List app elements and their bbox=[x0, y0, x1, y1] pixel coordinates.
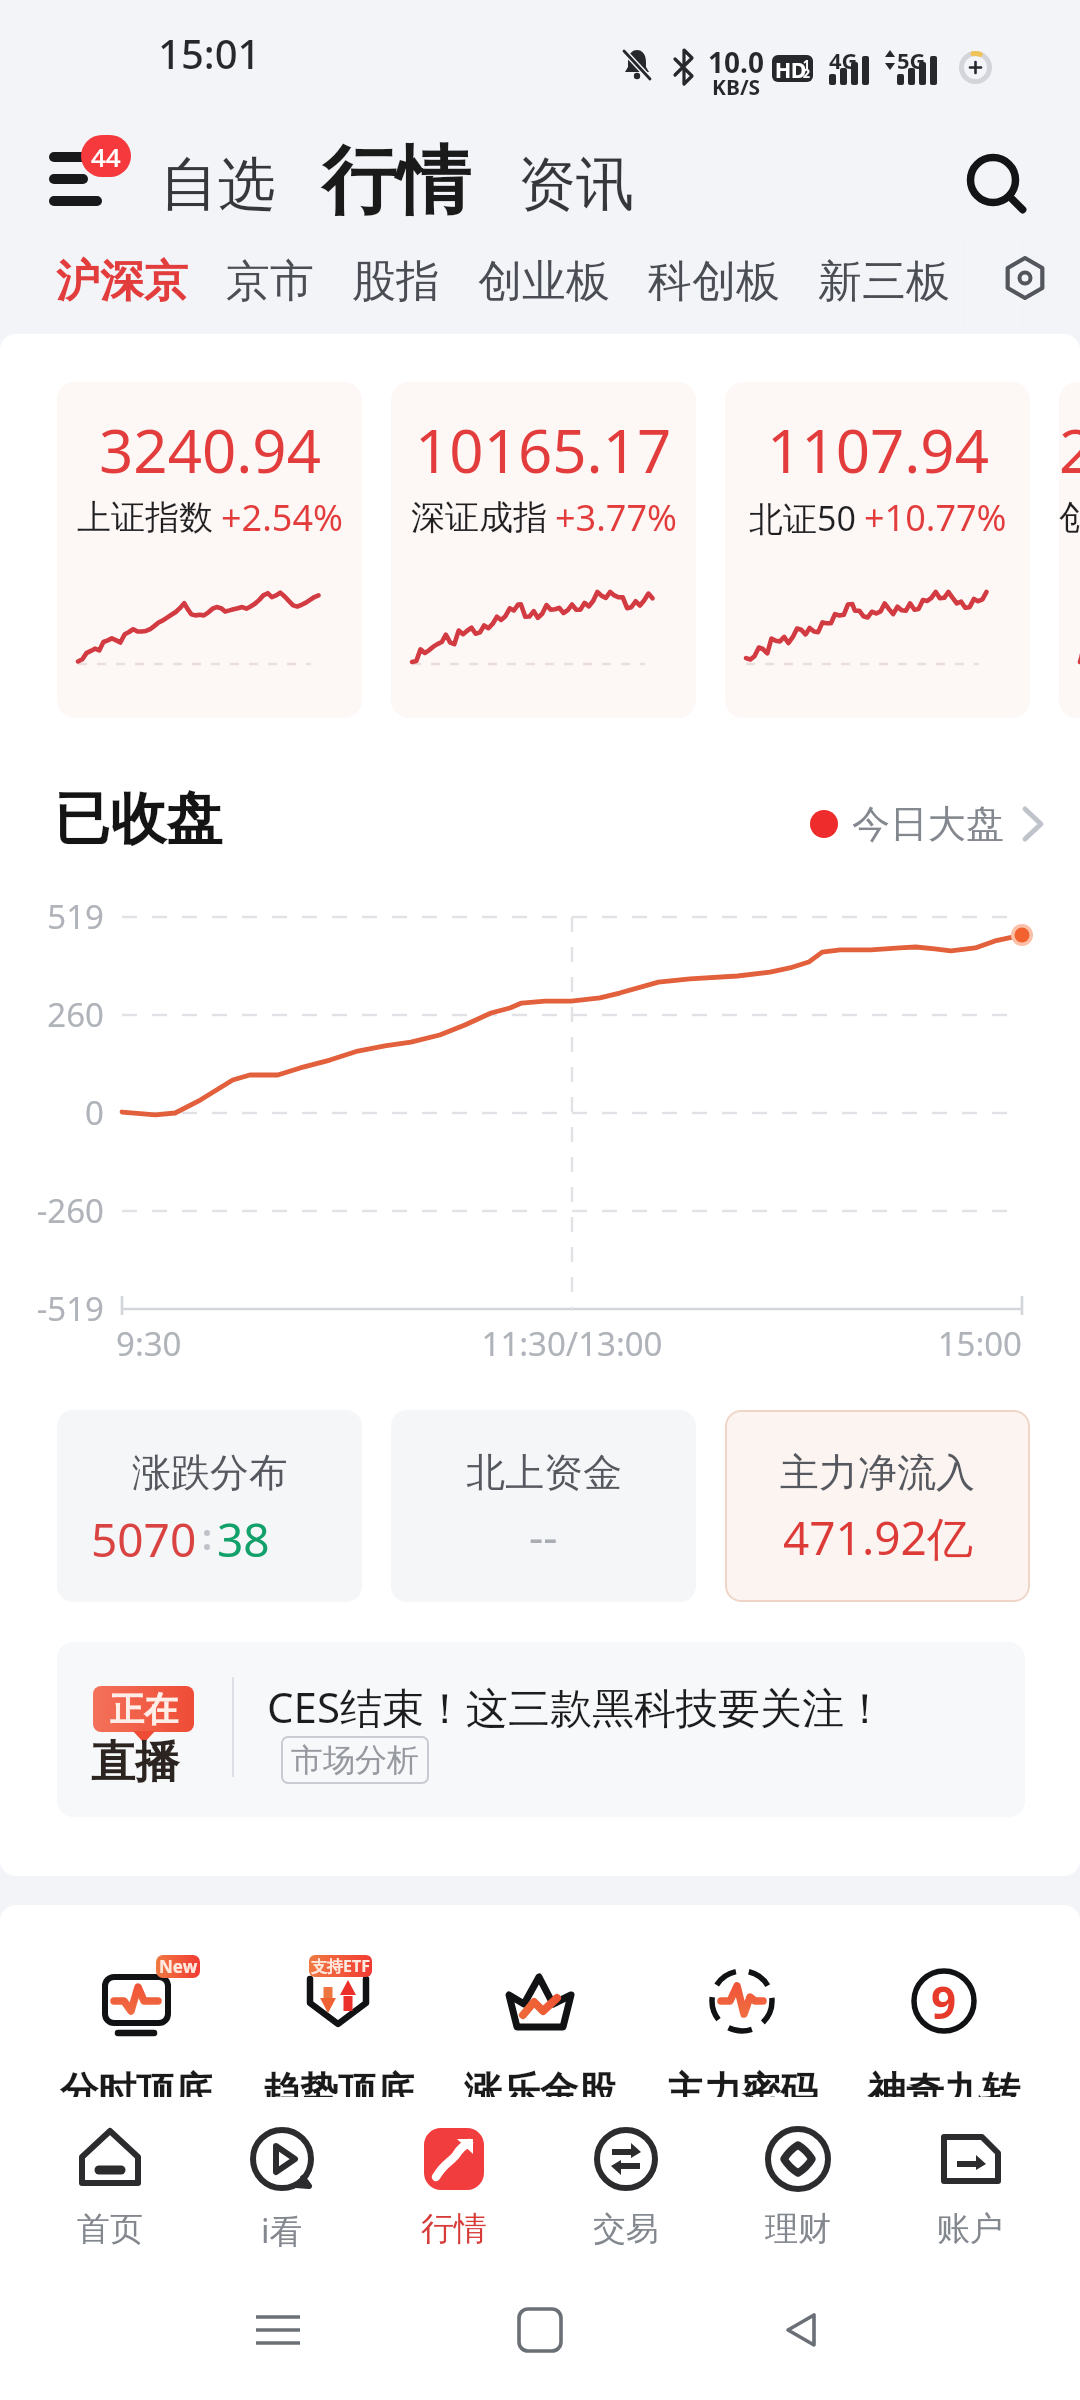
staticText: 创业板 bbox=[478, 254, 610, 309]
staticText: 正在 bbox=[110, 1688, 178, 1731]
button[interactable]: 股指 bbox=[333, 246, 459, 317]
staticText: 新三板 bbox=[818, 254, 950, 309]
button[interactable]: 交易 bbox=[540, 2097, 712, 2260]
button[interactable]: 今日大盘 bbox=[804, 792, 1054, 856]
staticText: 创业板指 bbox=[1059, 496, 1080, 539]
staticText: 股指 bbox=[352, 254, 440, 309]
staticText: 2 bbox=[803, 65, 810, 81]
staticText: 1107.94 bbox=[767, 409, 989, 491]
staticText: 471.92亿 bbox=[783, 1506, 973, 1569]
staticText: 主力密码 bbox=[666, 2067, 818, 2115]
button[interactable]: Settings bbox=[985, 238, 1065, 318]
staticText: 北上资金 bbox=[466, 1448, 622, 1497]
staticText: 38 bbox=[217, 1508, 270, 1571]
button[interactable]: 京市 bbox=[207, 246, 333, 317]
button[interactable]: 9 bbox=[843, 1955, 1045, 2115]
staticText: 9 bbox=[931, 1972, 957, 2032]
staticText: 上证指数 bbox=[77, 496, 213, 539]
staticText: 市场分析 bbox=[291, 1740, 419, 1780]
staticText: 北证50 bbox=[749, 495, 856, 541]
staticText: CES结束！这三款黑科技要关注！ bbox=[267, 1678, 886, 1735]
button[interactable]: 3240.94 bbox=[57, 382, 362, 718]
staticText: i看 bbox=[261, 2208, 303, 2253]
staticText: 44 bbox=[91, 139, 121, 174]
button[interactable]: Back bbox=[757, 2285, 847, 2375]
button[interactable]: 涨乐金股 bbox=[439, 1955, 641, 2115]
staticText: 2345.67 bbox=[1059, 409, 1080, 491]
button[interactable]: 行情 bbox=[368, 2097, 540, 2260]
staticText: 15:01 bbox=[158, 26, 261, 80]
staticText: 沪深京 bbox=[56, 254, 188, 309]
button[interactable]: 2345.67 bbox=[1059, 382, 1080, 718]
staticText: New bbox=[159, 1955, 198, 1978]
staticText: 直播 bbox=[91, 1735, 179, 1790]
staticText: 神奇九转 bbox=[868, 2067, 1020, 2115]
staticText: +10.77% bbox=[864, 493, 1007, 542]
button[interactable]: 自选 bbox=[160, 148, 276, 221]
staticText: 519 bbox=[0, 894, 104, 939]
staticText: 4G bbox=[829, 45, 858, 75]
button[interactable]: 新三板 bbox=[799, 246, 969, 317]
staticText: 11:30/13:00 bbox=[472, 1321, 672, 1366]
staticText: 交易 bbox=[593, 2208, 659, 2250]
staticText: 自选 bbox=[160, 148, 276, 221]
button[interactable]: 资讯 bbox=[518, 148, 634, 221]
button[interactable]: Menu bbox=[40, 125, 150, 225]
staticText: 首页 bbox=[77, 2208, 143, 2250]
staticText: 行情 bbox=[421, 2208, 487, 2250]
button[interactable]: 北上资金 bbox=[391, 1410, 696, 1602]
staticText: 15:00 bbox=[922, 1321, 1022, 1366]
button[interactable]: 主力密码 bbox=[641, 1955, 843, 2115]
staticText: 主力净流入 bbox=[780, 1448, 975, 1497]
button[interactable]: 账户 bbox=[884, 2097, 1056, 2260]
button[interactable]: New bbox=[35, 1955, 237, 2115]
staticText: KB/S bbox=[712, 73, 761, 102]
staticText: 1 bbox=[803, 56, 810, 72]
button[interactable]: i看 bbox=[196, 2097, 368, 2260]
button[interactable]: Recents bbox=[233, 2285, 323, 2375]
button[interactable]: 创业板 bbox=[459, 246, 629, 317]
staticText: -260 bbox=[0, 1188, 104, 1233]
staticText: 5G bbox=[897, 45, 926, 75]
button[interactable]: 科创板 bbox=[629, 246, 799, 317]
staticText: 分时顶底 bbox=[60, 2067, 212, 2115]
staticText: 趋势顶底 bbox=[262, 2067, 414, 2115]
button[interactable]: 行情 bbox=[322, 135, 470, 228]
staticText: 账户 bbox=[937, 2208, 1003, 2250]
staticText: 资讯 bbox=[518, 148, 634, 221]
staticText: 今日大盘 bbox=[852, 800, 1004, 848]
staticText: 3240.94 bbox=[99, 409, 321, 491]
staticText: -519 bbox=[0, 1286, 104, 1331]
staticText: 理财 bbox=[765, 2208, 831, 2250]
button[interactable]: 正在 bbox=[57, 1642, 1025, 1817]
staticText: 0 bbox=[0, 1090, 104, 1135]
staticText: HD bbox=[775, 56, 807, 82]
staticText: +3.77% bbox=[555, 493, 677, 542]
button[interactable]: 沪深京 bbox=[37, 246, 207, 317]
button[interactable]: Search bbox=[946, 133, 1046, 233]
staticText: 10165.17 bbox=[415, 409, 672, 491]
staticText: 已收盘 bbox=[54, 784, 222, 855]
staticText: 深证成指 bbox=[411, 496, 547, 539]
button[interactable]: Home bbox=[495, 2285, 585, 2375]
staticText: 支持ETF bbox=[311, 1955, 370, 1977]
staticText: 涨乐金股 bbox=[464, 2067, 616, 2115]
staticText: 5070 bbox=[91, 1508, 197, 1571]
staticText: 行情 bbox=[322, 135, 470, 228]
staticText: 京市 bbox=[226, 254, 314, 309]
button[interactable]: 10165.17 bbox=[391, 382, 696, 718]
staticText: +2.54% bbox=[221, 493, 343, 542]
button[interactable]: 1107.94 bbox=[725, 382, 1030, 718]
button[interactable]: 涨跌分布 bbox=[57, 1410, 362, 1602]
staticText: 9:30 bbox=[116, 1321, 182, 1366]
staticText: -- bbox=[529, 1506, 558, 1566]
button[interactable]: 首页 bbox=[24, 2097, 196, 2260]
button[interactable]: 支持ETF bbox=[237, 1955, 439, 2115]
staticText: 10.0 bbox=[708, 43, 764, 81]
button[interactable]: 主力净流入 bbox=[725, 1410, 1030, 1602]
staticText: 科创板 bbox=[648, 254, 780, 309]
button[interactable]: 理财 bbox=[712, 2097, 884, 2260]
staticText: 涨跌分布 bbox=[132, 1448, 288, 1497]
staticText: 260 bbox=[0, 992, 104, 1037]
